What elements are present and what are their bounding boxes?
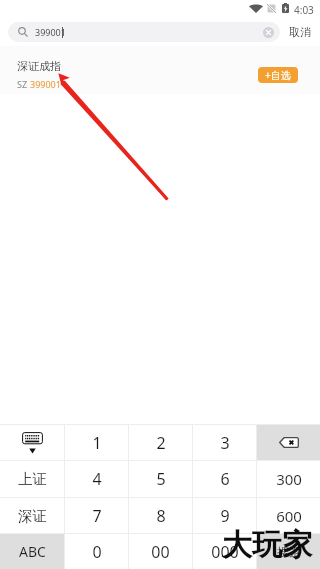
button[interactable]: 7 [65,498,128,533]
staticText: 8 [156,505,166,527]
button[interactable]: 9 [193,498,256,533]
button[interactable]: +自选 [258,67,298,83]
staticText: 399001 [35,26,66,38]
staticText: 9 [220,505,230,527]
staticText: 深证成指 [17,59,61,73]
button[interactable]: 300 [257,461,320,497]
button[interactable]: 3 [193,425,256,460]
staticText: 上证 [18,470,47,488]
button[interactable]: 5 [129,461,192,497]
button[interactable]: 399001 [8,22,280,42]
button[interactable]: Hide keyboard [0,425,64,460]
button[interactable]: 1 [65,425,128,460]
button[interactable]: 00 [129,534,192,569]
staticText: 00 [151,541,170,563]
staticText: 取消 [289,25,311,39]
staticText: ABC [19,542,46,561]
button[interactable]: ABC [0,534,64,569]
staticText: 0 [92,541,102,563]
staticText: 6 [220,468,230,490]
staticText: 600 [276,506,302,526]
button[interactable]: 0 [65,534,128,569]
button[interactable]: Clear text [263,27,274,38]
staticText: 4 [92,468,102,490]
staticText: 7 [92,505,102,527]
staticText: 399001 [30,78,61,90]
button[interactable]: 深证 [0,498,64,533]
staticText: 300 [276,469,302,489]
button[interactable]: 搜索 [257,534,320,569]
button[interactable]: 2 [129,425,192,460]
staticText: 大玩家 [222,526,312,564]
button[interactable]: 8 [129,498,192,533]
staticText: 1 [92,432,102,454]
staticText: 深证 [18,507,47,525]
staticText: 搜索 [277,544,301,559]
button[interactable]: 000 [193,534,256,569]
button[interactable]: Backspace [257,425,320,460]
button[interactable]: 上证 [0,461,64,497]
staticText: 4:03 [294,3,314,17]
button[interactable]: 取消 [280,18,320,46]
button[interactable]: 4 [65,461,128,497]
button[interactable]: 600 [257,498,320,533]
button[interactable]: 深证成指 [0,46,320,94]
staticText: SZ [17,78,30,90]
staticText: 3 [220,432,230,454]
staticText: 000 [211,541,239,563]
staticText: 5 [156,468,166,490]
button[interactable]: 6 [193,461,256,497]
staticText: +自选 [265,68,291,82]
staticText: 2 [156,432,166,454]
